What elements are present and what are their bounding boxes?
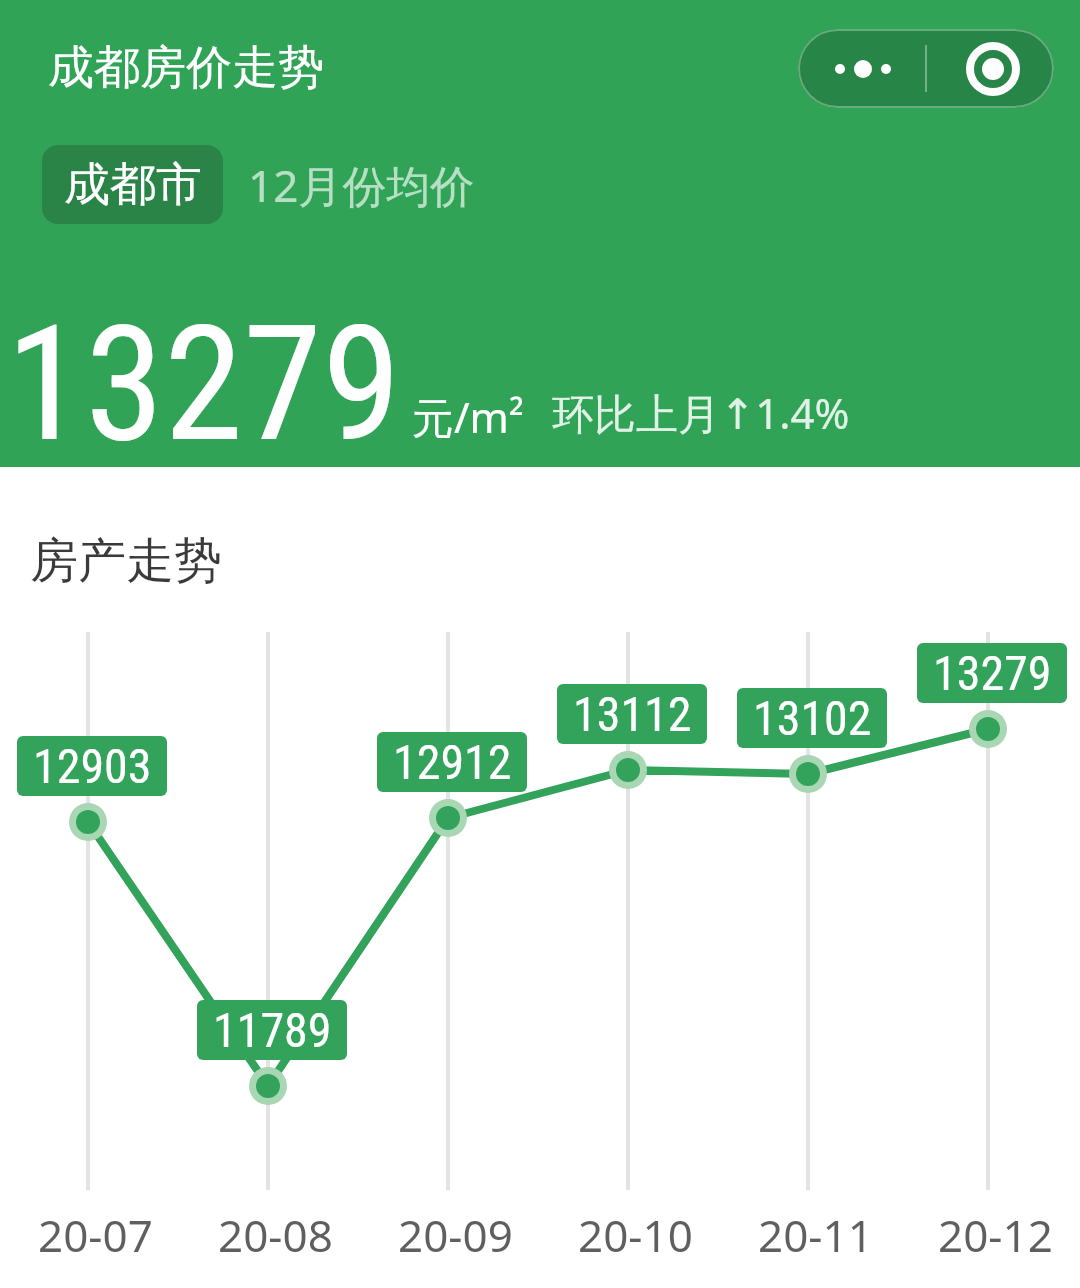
staticText: 成都房价走势 bbox=[48, 39, 324, 97]
staticText: 成都市 bbox=[64, 156, 202, 214]
staticText: 13102 bbox=[753, 690, 872, 746]
staticText: 13279 bbox=[933, 645, 1052, 701]
staticText: 20-09 bbox=[398, 1205, 513, 1261]
staticText: 12903 bbox=[33, 738, 152, 794]
staticText: 12912 bbox=[393, 734, 512, 790]
staticText: 元/m² bbox=[412, 388, 524, 445]
staticText: 20-11 bbox=[758, 1205, 873, 1261]
staticText: 房产走势 bbox=[30, 531, 222, 591]
staticText: 12月份均价 bbox=[248, 155, 475, 215]
staticText: 环比上月↑1.4% bbox=[552, 384, 850, 441]
staticText: 20-12 bbox=[938, 1205, 1053, 1261]
staticText: 20-10 bbox=[578, 1205, 693, 1261]
button[interactable]: 成都市 bbox=[42, 145, 223, 224]
staticText: 11789 bbox=[213, 1002, 332, 1058]
staticText: 20-07 bbox=[38, 1205, 153, 1261]
staticText: 13112 bbox=[573, 686, 692, 742]
staticText: 20-08 bbox=[218, 1205, 333, 1261]
button[interactable] bbox=[798, 29, 1054, 108]
staticText: 13279 bbox=[6, 291, 401, 441]
